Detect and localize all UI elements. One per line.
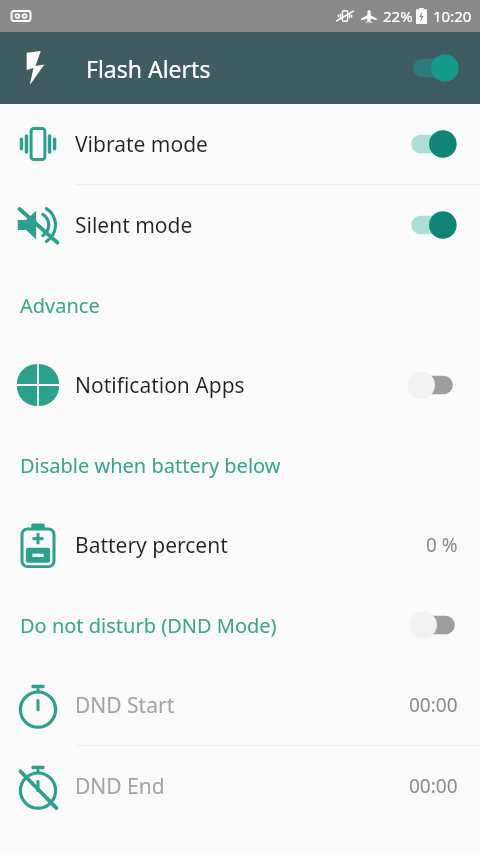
- staticText: 22%: [383, 6, 413, 26]
- staticText: Notification Apps: [75, 371, 406, 400]
- button[interactable]: Silent mode: [0, 185, 480, 265]
- button[interactable]: Toggle Do not disturb: [402, 601, 466, 649]
- staticText: Flash Alerts: [86, 53, 211, 84]
- button[interactable]: Toggle Flash Alerts: [402, 46, 466, 90]
- staticText: Do not disturb (DND Mode): [20, 612, 277, 639]
- staticText: Disable when battery below: [20, 452, 281, 479]
- staticText: DND Start: [75, 691, 409, 720]
- staticText: DND End: [75, 772, 409, 801]
- button[interactable]: Notification Apps: [0, 345, 480, 425]
- staticText: 00:00: [409, 692, 458, 718]
- button[interactable]: Vibrate mode: [0, 104, 480, 184]
- staticText: Silent mode: [75, 211, 406, 240]
- button[interactable]: DND End: [0, 746, 480, 826]
- staticText: Advance: [20, 292, 100, 319]
- staticText: 0 %: [426, 532, 458, 558]
- staticText: 00:00: [409, 773, 458, 799]
- staticText: Vibrate mode: [75, 130, 406, 159]
- staticText: Battery percent: [75, 531, 426, 560]
- button[interactable]: Battery percent: [0, 505, 480, 585]
- staticText: 10:20: [433, 6, 472, 26]
- button[interactable]: DND Start: [0, 665, 480, 745]
